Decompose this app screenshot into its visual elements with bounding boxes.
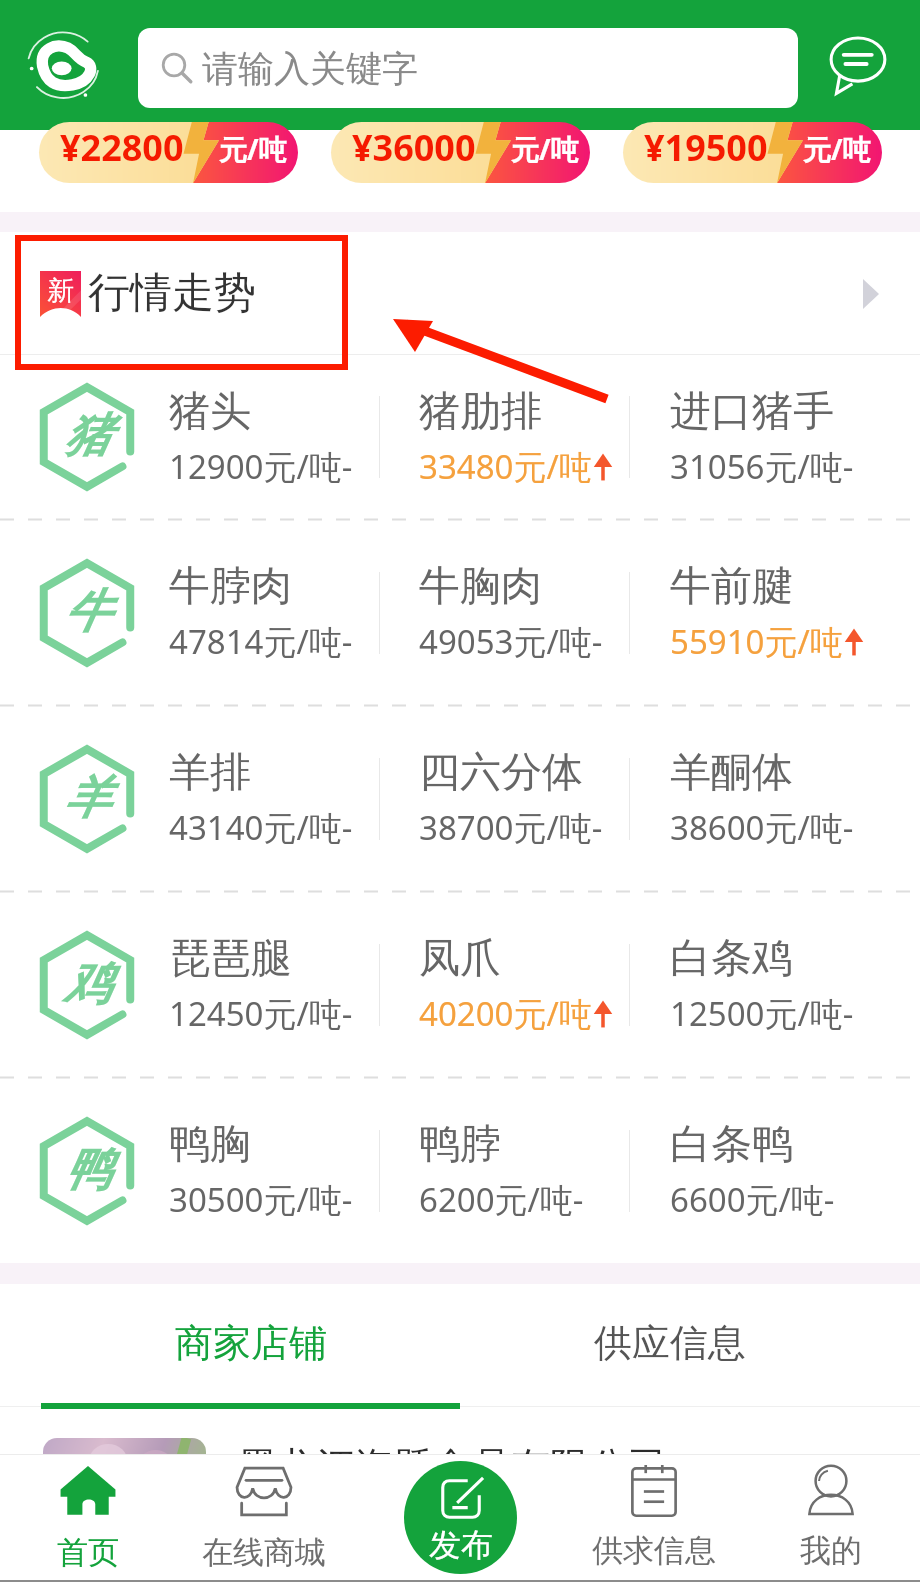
staticText: 猪肋排 [419, 386, 542, 438]
staticText: 羊酮体 [670, 747, 793, 799]
staticText: 鸭脖 [419, 1119, 501, 1171]
button[interactable]: 供应信息 [461, 1284, 879, 1401]
staticText: 6600元/吨- [670, 1177, 835, 1222]
staticText: 商家店铺 [175, 1319, 327, 1367]
staticText: 47814元/吨- [169, 619, 353, 664]
button[interactable]: 请输入关键字 [138, 28, 798, 108]
staticText: 四六分体 [419, 747, 583, 799]
button[interactable]: 我的 [739, 1454, 920, 1582]
staticText: 首页 [57, 1533, 119, 1572]
staticText: 白条鸭 [670, 1119, 793, 1171]
staticText: 进口猪手 [670, 386, 834, 438]
button[interactable]: 商家店铺 [41, 1284, 461, 1401]
staticText: 牛 [64, 583, 110, 641]
staticText: ¥19500 [644, 123, 768, 172]
staticText: 12450元/吨- [169, 991, 353, 1036]
button[interactable]: 猪 [0, 355, 920, 519]
staticText: 元/吨 [219, 130, 287, 168]
staticText: 31056元/吨- [670, 444, 854, 489]
staticText: ¥36000 [352, 123, 476, 172]
button[interactable]: 发布 [404, 1461, 517, 1574]
staticText: 黑龙江海跃食品有限公司 [238, 1442, 667, 1491]
staticText: 供应信息 [594, 1319, 746, 1367]
button[interactable]: ¥22800 [39, 122, 298, 183]
button[interactable]: 新 [0, 232, 920, 354]
staticText: 猪 [64, 407, 110, 465]
staticText: 33480元/吨 [419, 444, 592, 489]
button[interactable]: 在线商城 [172, 1454, 356, 1582]
staticText: 鸭 [64, 1141, 110, 1199]
staticText: 43140元/吨- [169, 805, 353, 850]
button[interactable]: Logo [22, 24, 106, 108]
staticText: 凤爪 [419, 933, 501, 985]
staticText: 琵琶腿 [169, 933, 292, 985]
staticText: 40200元/吨 [419, 991, 592, 1036]
staticText: 牛前腱 [670, 561, 793, 613]
staticText: 请输入关键字 [202, 46, 418, 91]
staticText: 6200元/吨- [419, 1177, 584, 1222]
staticText: 我的 [800, 1531, 862, 1570]
staticText: 鸡 [64, 955, 110, 1013]
staticText: 49053元/吨- [419, 619, 603, 664]
staticText: 55910元/吨 [670, 619, 843, 664]
staticText: 12900元/吨- [169, 444, 353, 489]
staticText: 行情走势 [88, 267, 256, 320]
button[interactable]: 鸭 [0, 1078, 920, 1263]
staticText: 羊排 [169, 747, 251, 799]
button[interactable]: 羊 [0, 706, 920, 891]
staticText: 12500元/吨- [670, 991, 854, 1036]
staticText: 在线商城 [202, 1533, 326, 1572]
staticText: 供求信息 [592, 1531, 716, 1570]
button[interactable]: ¥19500 [623, 122, 882, 183]
staticText: 元/吨 [803, 130, 871, 168]
staticText: 38700元/吨- [419, 805, 603, 850]
button[interactable]: 牛 [0, 520, 920, 705]
staticText: 元/吨 [511, 130, 579, 168]
button[interactable]: 首页 [0, 1454, 180, 1582]
staticText: 30500元/吨- [169, 1177, 353, 1222]
staticText: ¥22800 [60, 123, 184, 172]
staticText: 38600元/吨- [670, 805, 854, 850]
staticText: 鸭胸 [169, 1119, 251, 1171]
staticText: 发布 [429, 1525, 493, 1565]
button[interactable]: 供求信息 [562, 1454, 746, 1582]
button[interactable]: Messages [818, 26, 898, 106]
button[interactable]: 鸡 [0, 892, 920, 1077]
button[interactable]: ¥36000 [331, 122, 590, 183]
staticText: 猪头 [169, 386, 251, 438]
staticText: 新 [47, 274, 74, 308]
staticText: 牛脖肉 [169, 561, 292, 613]
staticText: 羊 [64, 769, 110, 827]
staticText: 牛胸肉 [419, 561, 542, 613]
staticText: 白条鸡 [670, 933, 793, 985]
